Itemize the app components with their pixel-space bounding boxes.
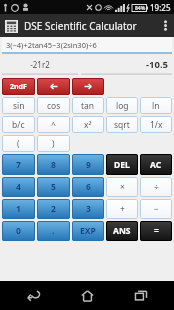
button[interactable]: ÷	[140, 177, 172, 197]
staticText: 7	[16, 159, 21, 171]
staticText: 0	[16, 225, 21, 237]
staticText: 6	[86, 181, 91, 193]
staticText: 1/x	[150, 119, 163, 131]
staticText: +	[120, 203, 125, 215]
staticText: log	[116, 100, 129, 112]
button[interactable]: 1/x	[140, 116, 172, 133]
button[interactable]: Move cursor right	[72, 78, 104, 95]
staticText: 2ndF	[10, 82, 27, 92]
button[interactable]: log	[106, 97, 138, 114]
button[interactable]: b/c	[2, 116, 35, 133]
staticText: x²	[84, 119, 92, 131]
staticText: AC	[150, 159, 162, 171]
staticText: ×	[120, 181, 125, 193]
button[interactable]: 9	[72, 154, 104, 175]
staticText: 8	[51, 159, 56, 171]
button[interactable]: -21r2	[2, 54, 78, 75]
staticText: .	[52, 225, 55, 237]
button[interactable]: x²	[72, 116, 104, 133]
button[interactable]: 7	[2, 154, 35, 175]
button[interactable]: ^	[37, 116, 70, 133]
button[interactable]: ×	[106, 177, 138, 197]
staticText: (	[17, 138, 20, 150]
button[interactable]: Back	[14, 281, 54, 310]
staticText: ANS	[113, 225, 131, 237]
staticText: EXP	[80, 225, 96, 237]
button[interactable]: 1	[2, 199, 35, 219]
staticText: sin	[13, 100, 25, 112]
button[interactable]: -10.5	[81, 54, 172, 75]
staticText: 4	[16, 181, 21, 193]
button[interactable]: 2ndF	[2, 78, 35, 95]
button[interactable]: EXP	[72, 221, 104, 241]
button[interactable]: ln	[140, 97, 172, 114]
button[interactable]: 2	[37, 199, 70, 219]
button[interactable]: 3(−4)+2tan45−3(2sin30)÷6	[2, 37, 172, 54]
button[interactable]: Move cursor left	[37, 78, 70, 95]
staticText: -21r2	[6, 59, 74, 70]
button[interactable]: AC	[140, 154, 172, 175]
staticText: =	[154, 225, 159, 237]
staticText: )	[52, 138, 55, 150]
button[interactable]: cos	[37, 97, 70, 114]
button[interactable]: 5	[37, 177, 70, 197]
button[interactable]: 8	[37, 154, 70, 175]
staticText: 9	[86, 159, 91, 171]
staticText: 2	[51, 203, 56, 215]
button[interactable]: =	[140, 221, 172, 241]
button[interactable]: .	[37, 221, 70, 241]
button[interactable]: 6	[72, 177, 104, 197]
button[interactable]: 4	[2, 177, 35, 197]
staticText: 3(−4)+2tan45−3(2sin30)÷6	[6, 40, 97, 50]
button[interactable]: ANS	[106, 221, 138, 241]
staticText: b/c	[12, 119, 25, 131]
button[interactable]: sin	[2, 97, 35, 114]
staticText: −	[154, 203, 159, 215]
button[interactable]: +	[106, 199, 138, 219]
staticText: ln	[152, 100, 160, 112]
button[interactable]: )	[37, 135, 70, 152]
button[interactable]: 3	[72, 199, 104, 219]
staticText: 5	[51, 181, 56, 193]
button[interactable]: (	[2, 135, 35, 152]
button[interactable]: More options	[156, 14, 174, 37]
staticText: sqrt	[114, 119, 130, 131]
button[interactable]: Home	[67, 281, 107, 310]
button[interactable]: −	[140, 199, 172, 219]
staticText: 1	[16, 203, 21, 215]
staticText: ÷	[154, 181, 159, 193]
staticText: 3	[86, 203, 91, 215]
staticText: -10.5	[85, 58, 168, 71]
button[interactable]: DEL	[106, 154, 138, 175]
button[interactable]: Recent apps	[121, 281, 161, 310]
button[interactable]: sqrt	[106, 116, 138, 133]
staticText: DSE Scientific Calculator	[24, 19, 137, 33]
staticText: DEL	[114, 159, 130, 171]
staticText: tan	[81, 100, 95, 112]
button[interactable]: 0	[2, 221, 35, 241]
staticText: cos	[47, 100, 61, 112]
staticText: 84%	[135, 5, 146, 12]
staticText: 19:25	[150, 2, 171, 13]
button[interactable]: tan	[72, 97, 104, 114]
staticText: ^	[51, 119, 56, 131]
